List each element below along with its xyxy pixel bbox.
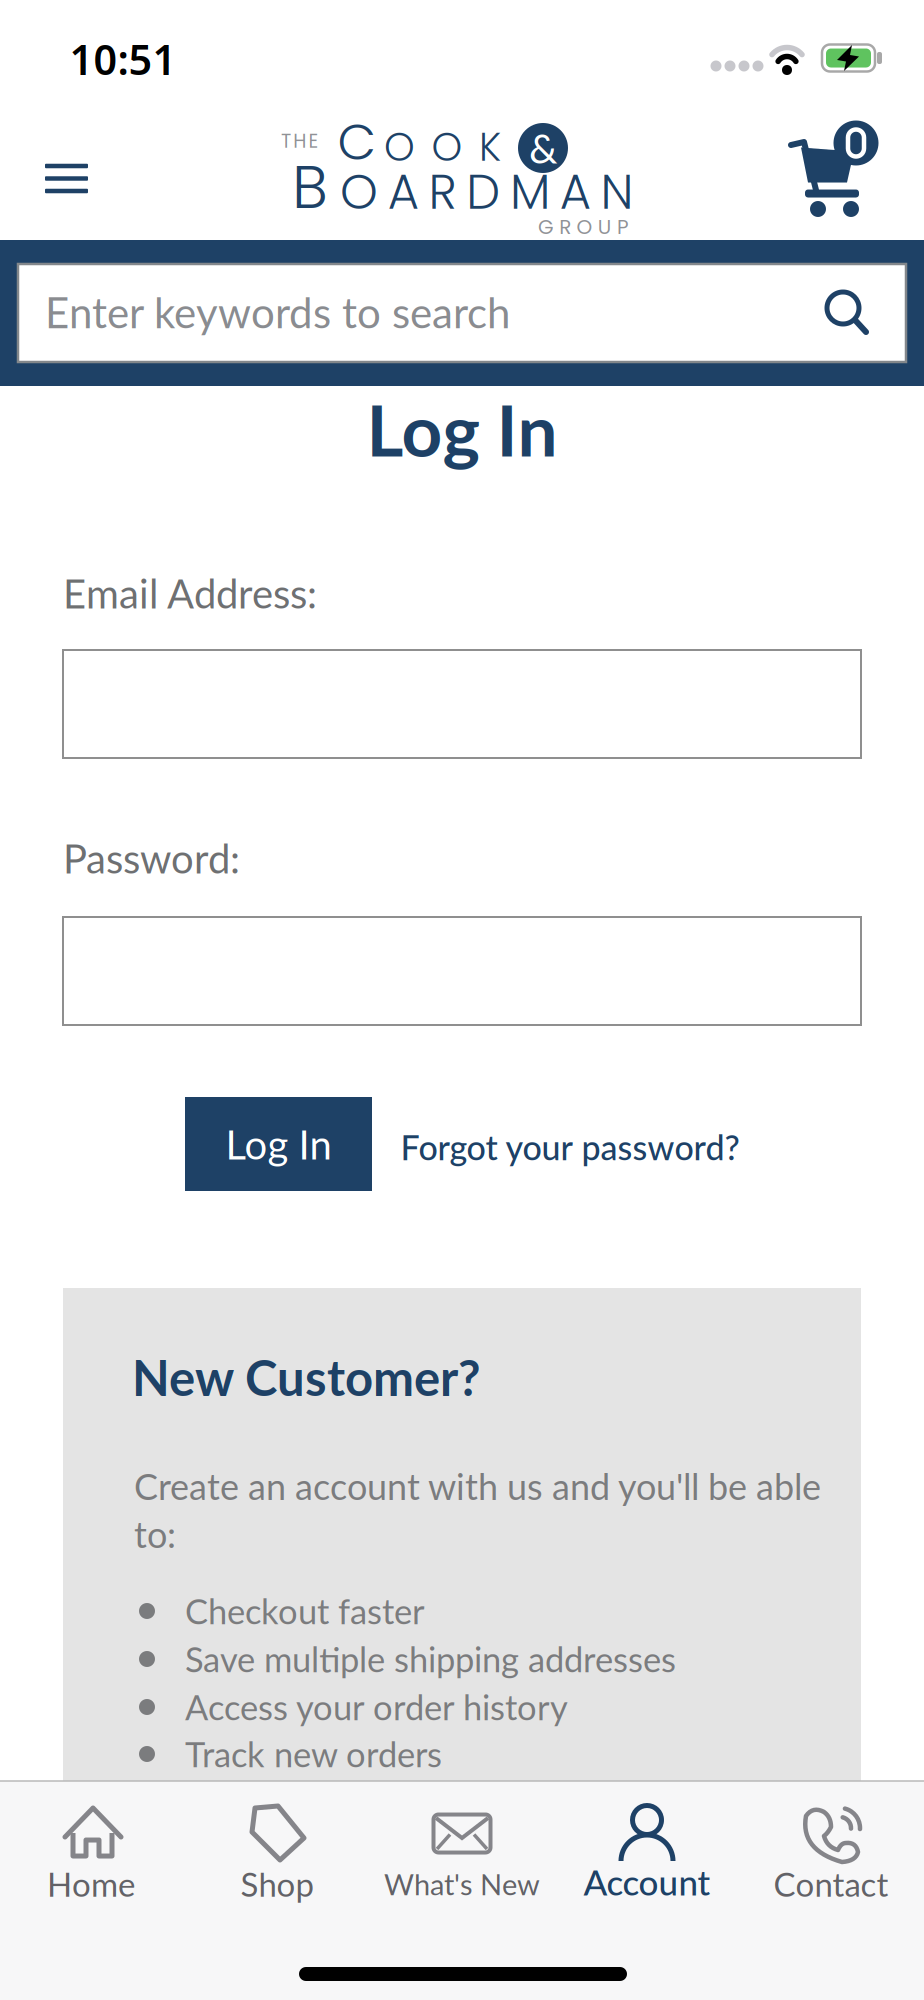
button[interactable] <box>790 113 890 218</box>
staticText: Log In <box>366 386 557 472</box>
staticText: Password: <box>63 834 240 882</box>
staticText: Access your order history <box>185 1686 568 1728</box>
staticText: New Customer? <box>132 1348 481 1406</box>
staticText: Log In <box>225 1120 331 1168</box>
staticText: 10:51 <box>69 32 176 86</box>
button[interactable] <box>63 650 861 758</box>
staticText: to: <box>134 1512 176 1556</box>
staticText: GROUP <box>538 213 629 241</box>
staticText: Forgot your password? <box>400 1127 739 1167</box>
staticText: Enter keywords to search <box>45 287 510 337</box>
button[interactable]: Account <box>562 1783 732 1898</box>
staticText: & <box>529 124 557 172</box>
button[interactable]: Home <box>7 1783 177 1898</box>
staticText: Track new orders <box>185 1733 442 1775</box>
staticText: OOK <box>384 120 501 174</box>
staticText: Contact <box>773 1864 888 1904</box>
button[interactable]: Contact <box>746 1783 916 1898</box>
staticText: Shop <box>240 1864 313 1904</box>
button[interactable]: Shop <box>192 1783 362 1898</box>
button[interactable]: Log In <box>185 1097 372 1191</box>
button[interactable]: Enter keywords to search <box>18 264 906 362</box>
staticText: THE <box>281 128 318 154</box>
button[interactable] <box>63 917 861 1025</box>
staticText: What's New <box>384 1867 540 1901</box>
button[interactable] <box>42 161 90 196</box>
staticText: C <box>337 107 376 177</box>
staticText: B <box>292 145 328 229</box>
staticText: Create an account with us and you'll be … <box>134 1464 821 1508</box>
staticText: Checkout faster <box>185 1590 425 1632</box>
button[interactable]: What's New <box>377 1783 547 1898</box>
staticText: Save multiple shipping addresses <box>185 1638 676 1680</box>
staticText: Account <box>583 1861 710 1903</box>
staticText: OARDMAN <box>340 158 633 226</box>
staticText: Home <box>47 1864 135 1904</box>
staticText: Email Address: <box>63 569 317 617</box>
button[interactable]: Forgot your password? <box>400 1127 739 1167</box>
